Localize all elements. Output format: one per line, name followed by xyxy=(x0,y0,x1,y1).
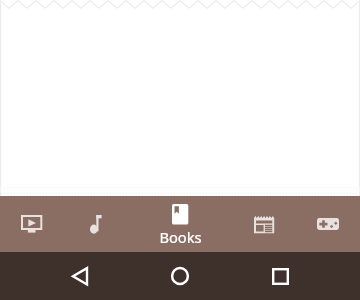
button[interactable]: Movies and TV xyxy=(0,196,64,252)
staticText: Books xyxy=(159,227,202,247)
button[interactable]: Recent apps xyxy=(256,252,304,300)
button[interactable]: Home xyxy=(156,252,204,300)
button[interactable]: Books xyxy=(128,196,232,252)
button[interactable]: Music xyxy=(64,196,128,252)
button[interactable]: Newsstand xyxy=(232,196,296,252)
button[interactable]: Games xyxy=(296,196,360,252)
button[interactable]: Back xyxy=(56,252,104,300)
